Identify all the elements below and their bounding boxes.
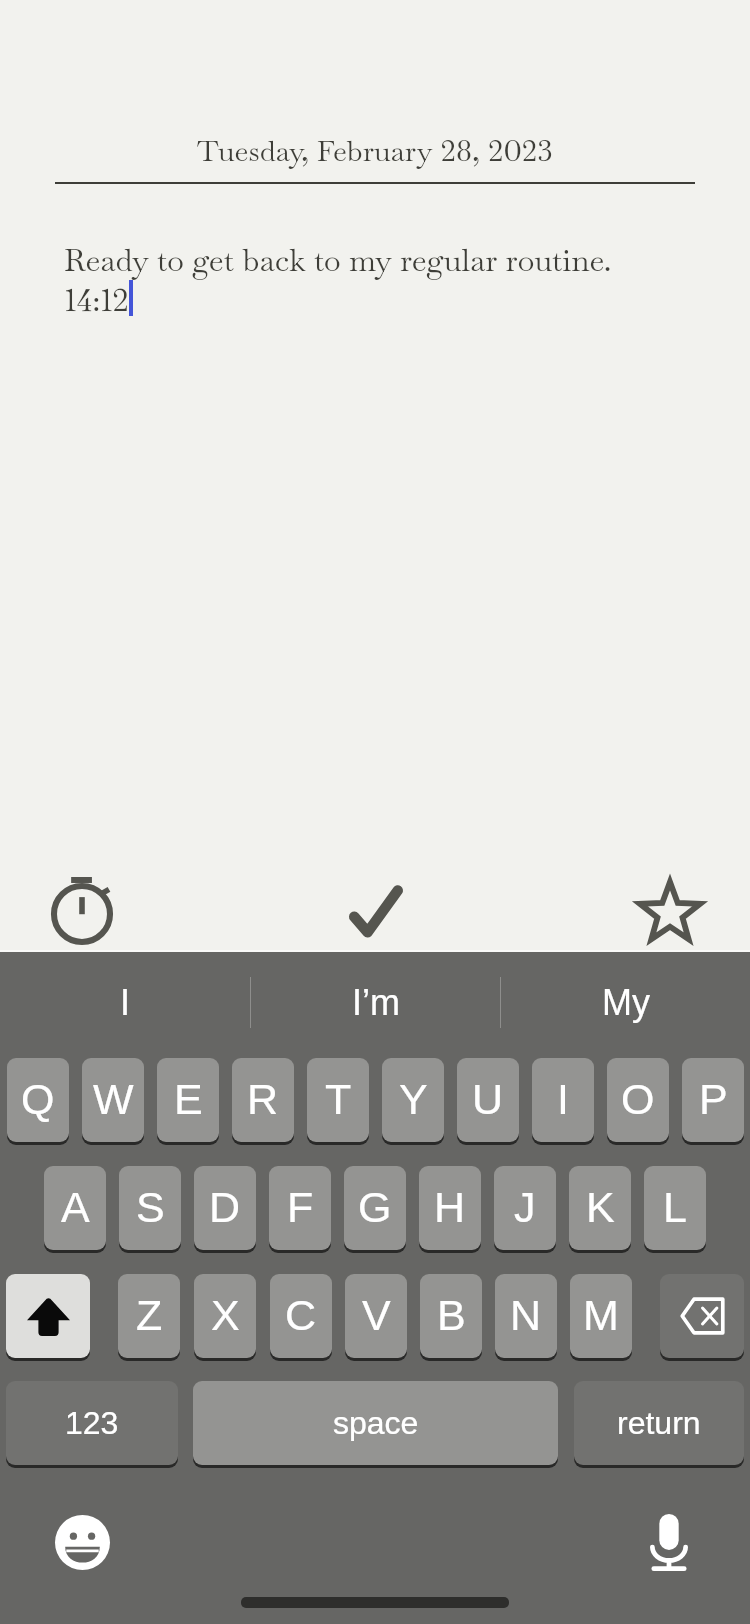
staticText: Ready to get back to my regular routine.	[64, 240, 612, 280]
button[interactable]: P	[682, 1058, 744, 1145]
button[interactable]: B	[420, 1274, 482, 1361]
staticText: C	[285, 1291, 317, 1339]
staticText: B	[437, 1291, 466, 1339]
button[interactable]: U	[457, 1058, 519, 1145]
button[interactable]: My	[501, 952, 750, 1058]
button[interactable]: space	[193, 1381, 558, 1468]
staticText: F	[287, 1183, 314, 1231]
staticText: return	[617, 1405, 701, 1441]
button[interactable]: I	[532, 1058, 594, 1145]
staticText: H	[434, 1183, 466, 1231]
button[interactable]: C	[270, 1274, 332, 1361]
button[interactable]: O	[607, 1058, 669, 1145]
button[interactable]: I’m	[251, 952, 500, 1058]
staticText: J	[514, 1183, 536, 1231]
button[interactable]: M	[570, 1274, 632, 1361]
button[interactable]: N	[495, 1274, 557, 1361]
staticText: L	[663, 1183, 687, 1231]
staticText: Y	[399, 1075, 428, 1123]
button[interactable]: R	[232, 1058, 294, 1145]
staticText: V	[362, 1291, 391, 1339]
button[interactable]: A	[44, 1166, 106, 1253]
staticText: I’m	[352, 982, 400, 1022]
button[interactable]: Emoji	[40, 1500, 124, 1584]
button[interactable]: S	[119, 1166, 181, 1253]
button[interactable]: 123	[6, 1381, 178, 1468]
staticText: U	[472, 1075, 504, 1123]
button[interactable]: X	[194, 1274, 256, 1361]
staticText: O	[621, 1075, 655, 1123]
button[interactable]: V	[345, 1274, 407, 1361]
staticText: 123	[65, 1405, 119, 1441]
button[interactable]: I	[0, 952, 250, 1058]
staticText: T	[325, 1075, 352, 1123]
button[interactable]: Shift	[6, 1274, 90, 1361]
staticText: I	[120, 982, 131, 1022]
staticText: I	[557, 1075, 569, 1123]
staticText: E	[174, 1075, 203, 1123]
staticText: 14:12	[64, 280, 129, 320]
staticText: R	[247, 1075, 279, 1123]
button[interactable]: return	[574, 1381, 744, 1468]
staticText: Q	[21, 1075, 55, 1123]
staticText: N	[510, 1291, 542, 1339]
staticText: P	[699, 1075, 728, 1123]
staticText: S	[136, 1183, 165, 1231]
staticText: Z	[136, 1291, 163, 1339]
button[interactable]: F	[269, 1166, 331, 1253]
button[interactable]: L	[644, 1166, 706, 1253]
button[interactable]: Backspace	[660, 1274, 744, 1361]
button[interactable]: H	[419, 1166, 481, 1253]
staticText: space	[333, 1405, 419, 1441]
button[interactable]: Q	[7, 1058, 69, 1145]
staticText: Tuesday, February 28, 2023	[0, 132, 750, 169]
staticText: My	[602, 982, 650, 1022]
button[interactable]: G	[344, 1166, 406, 1253]
staticText: M	[583, 1291, 619, 1339]
button[interactable]: Dictation	[627, 1500, 711, 1584]
button[interactable]: T	[307, 1058, 369, 1145]
button[interactable]: K	[569, 1166, 631, 1253]
button[interactable]: Z	[118, 1274, 180, 1361]
button[interactable]: Done	[296, 870, 456, 952]
staticText: D	[209, 1183, 241, 1231]
staticText: G	[358, 1183, 392, 1231]
button[interactable]: Favorite	[590, 870, 750, 952]
button[interactable]: Timer	[2, 870, 162, 952]
button[interactable]: E	[157, 1058, 219, 1145]
staticText: K	[586, 1183, 615, 1231]
staticText: X	[211, 1291, 240, 1339]
button[interactable]: Y	[382, 1058, 444, 1145]
staticText: W	[93, 1075, 134, 1123]
staticText: A	[61, 1183, 90, 1231]
button[interactable]: J	[494, 1166, 556, 1253]
button[interactable]: D	[194, 1166, 256, 1253]
button[interactable]: W	[82, 1058, 144, 1145]
